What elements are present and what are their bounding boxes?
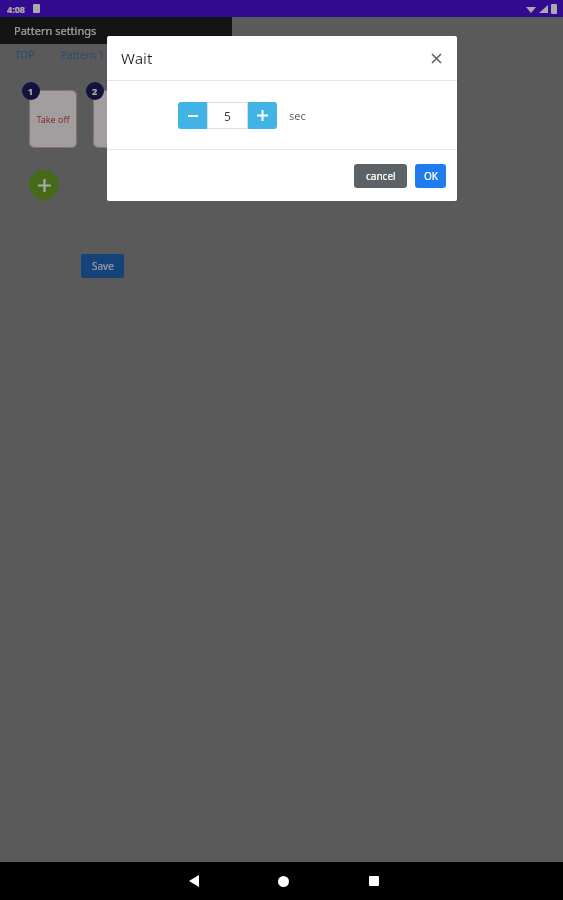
staticText: Pattern 1 — [61, 48, 105, 62]
button[interactable]: Home — [272, 870, 294, 892]
button[interactable]: cancel — [354, 164, 407, 188]
staticText: sec — [289, 108, 306, 123]
button[interactable]: Add step — [29, 170, 59, 200]
button[interactable]: Close — [425, 47, 447, 69]
staticText: 4:08 — [7, 3, 25, 15]
staticText: Save — [92, 259, 114, 273]
button[interactable]: Take off — [29, 90, 77, 148]
button[interactable]: TOP — [13, 48, 37, 62]
button[interactable]: Save — [81, 254, 124, 278]
staticText: TOP — [15, 48, 35, 62]
button[interactable]: Pattern 1 — [59, 48, 107, 62]
button[interactable]: Increase — [248, 102, 277, 129]
staticText: OK — [424, 169, 438, 183]
button[interactable]: OK — [415, 164, 446, 188]
staticText: 1 — [28, 85, 34, 97]
staticText: Take off — [36, 113, 70, 125]
staticText: 2 — [92, 85, 98, 97]
button[interactable]: La — [93, 90, 141, 148]
staticText: Wait — [121, 48, 153, 68]
staticText: Pattern settings — [14, 23, 97, 38]
staticText: cancel — [366, 169, 396, 183]
button[interactable]: Back — [183, 870, 205, 892]
button[interactable]: Recents — [363, 870, 385, 892]
staticText: 5 — [224, 108, 231, 124]
button[interactable]: Decrease — [178, 102, 207, 129]
